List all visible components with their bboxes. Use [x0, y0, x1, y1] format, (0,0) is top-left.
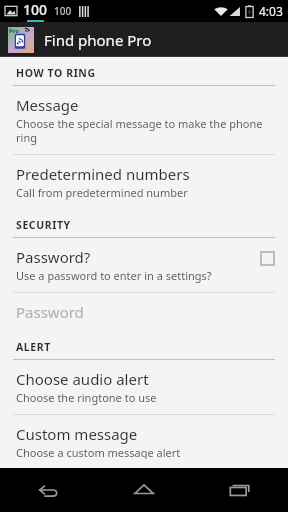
button[interactable]: Custom message [0, 415, 288, 468]
staticText: Custom message [16, 424, 138, 444]
staticText: Choose the ringtone to use [16, 390, 157, 405]
staticText: Pro [9, 27, 20, 35]
staticText: Find phone Pro [44, 30, 152, 50]
staticText: Message [16, 95, 79, 115]
button[interactable]: Password? [0, 238, 288, 292]
staticText: SECURITY [16, 218, 71, 232]
staticText: Choose audio alert [16, 369, 149, 389]
button[interactable]: Message [0, 86, 288, 154]
button[interactable]: Choose audio alert [0, 360, 288, 414]
staticText: 100 [54, 4, 72, 18]
staticText: Call from predetermined number [16, 185, 188, 200]
staticText: ALERT [16, 340, 51, 354]
button[interactable]: Recent apps [192, 468, 288, 512]
staticText: Password [16, 302, 84, 322]
button[interactable]: Predetermined numbers [0, 155, 288, 209]
button[interactable]: Password [0, 293, 288, 331]
staticText: Password? [16, 247, 91, 267]
staticText: HOW TO RING [16, 66, 96, 80]
button[interactable]: Use password toggle [258, 249, 276, 267]
staticText: Use a password to enter in a settings? [16, 268, 212, 283]
staticText: Choose a custom message alert [16, 445, 181, 459]
staticText: 4:03 [259, 3, 283, 19]
button[interactable]: Back [0, 468, 96, 512]
staticText: Choose the special message to make the p… [16, 116, 272, 145]
staticText: Predetermined numbers [16, 164, 190, 184]
button[interactable]: Home [96, 468, 192, 512]
staticText: 100 [23, 0, 48, 19]
